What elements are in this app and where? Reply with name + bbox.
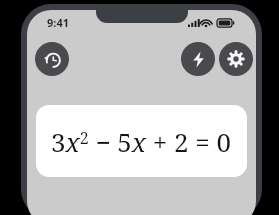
- button[interactable]: History: [35, 42, 69, 76]
- staticText: 3x2 − 5x + 2 = 0: [51, 124, 232, 159]
- button[interactable]: Settings: [219, 42, 253, 76]
- button[interactable]: Solve: [181, 42, 215, 76]
- button[interactable]: 3x2 − 5x + 2 = 0: [36, 105, 247, 177]
- staticText: 9:41: [47, 15, 69, 30]
